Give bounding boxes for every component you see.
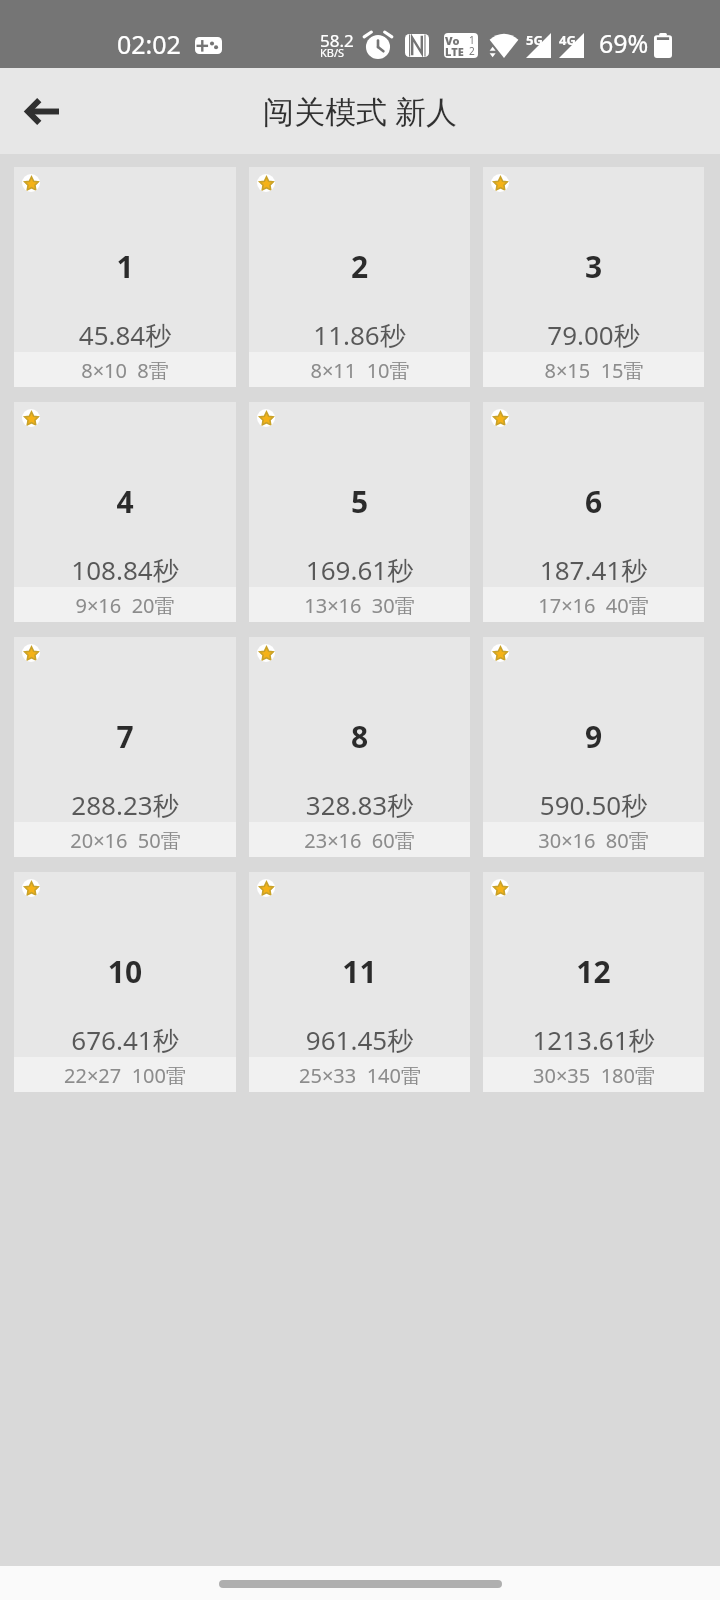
button[interactable]: 3 xyxy=(483,167,704,387)
staticText: 8×11 10雷 xyxy=(310,357,410,384)
staticText: 02:02 xyxy=(117,27,181,61)
staticText: 17×16 40雷 xyxy=(538,592,649,619)
staticText: 8×10 8雷 xyxy=(81,357,169,384)
button[interactable]: Back xyxy=(16,85,68,137)
staticText: 7 xyxy=(14,716,236,757)
button[interactable]: 6 xyxy=(483,402,704,622)
staticText: 1213.61秒 xyxy=(483,1022,704,1058)
staticText: 4 xyxy=(14,481,236,522)
staticText: 3 xyxy=(483,246,704,287)
staticText: 2 xyxy=(469,44,475,58)
staticText: 闯关模式 新人 xyxy=(263,90,458,132)
button[interactable]: 2 xyxy=(249,167,470,387)
button[interactable]: 11 xyxy=(249,872,470,1092)
staticText: 11 xyxy=(249,951,470,992)
button[interactable]: 10 xyxy=(14,872,236,1092)
button[interactable]: 7 xyxy=(14,637,236,857)
staticText: 676.41秒 xyxy=(14,1022,236,1058)
staticText: 9 xyxy=(483,716,704,757)
staticText: 22×27 100雷 xyxy=(64,1062,186,1089)
staticText: 108.84秒 xyxy=(14,552,236,588)
button[interactable]: 9 xyxy=(483,637,704,857)
staticText: 79.00秒 xyxy=(483,317,704,353)
staticText: 23×16 60雷 xyxy=(304,827,415,854)
staticText: 20×16 50雷 xyxy=(70,827,181,854)
staticText: 45.84秒 xyxy=(14,317,236,353)
staticText: 30×16 80雷 xyxy=(538,827,649,854)
staticText: 1 xyxy=(469,33,475,47)
staticText: 961.45秒 xyxy=(249,1022,470,1058)
staticText: 187.41秒 xyxy=(483,552,704,588)
staticText: Vo xyxy=(445,33,460,48)
staticText: 10 xyxy=(14,951,236,992)
button[interactable]: 5 xyxy=(249,402,470,622)
staticText: 25×33 140雷 xyxy=(299,1062,421,1089)
staticText: LTE xyxy=(445,44,464,58)
staticText: 69% xyxy=(599,26,649,60)
staticText: 4G xyxy=(559,31,576,49)
staticText: 8×15 15雷 xyxy=(544,357,644,384)
staticText: 590.50秒 xyxy=(483,787,704,823)
staticText: 6 xyxy=(483,481,704,522)
staticText: 1 xyxy=(14,246,236,287)
staticText: 288.23秒 xyxy=(14,787,236,823)
button[interactable]: 4 xyxy=(14,402,236,622)
staticText: 12 xyxy=(483,951,704,992)
staticText: KB/S xyxy=(320,45,345,60)
button[interactable]: 1 xyxy=(14,167,236,387)
staticText: 11.86秒 xyxy=(249,317,470,353)
staticText: 5 xyxy=(249,481,470,522)
button[interactable]: 12 xyxy=(483,872,704,1092)
staticText: 13×16 30雷 xyxy=(304,592,415,619)
staticText: 328.83秒 xyxy=(249,787,470,823)
button[interactable]: 8 xyxy=(249,637,470,857)
staticText: 9×16 20雷 xyxy=(75,592,175,619)
staticText: 58.2 xyxy=(320,29,354,52)
staticText: 5G xyxy=(526,31,543,49)
staticText: 8 xyxy=(249,716,470,757)
staticText: 30×35 180雷 xyxy=(533,1062,655,1089)
staticText: 169.61秒 xyxy=(249,552,470,588)
staticText: 2 xyxy=(249,246,470,287)
